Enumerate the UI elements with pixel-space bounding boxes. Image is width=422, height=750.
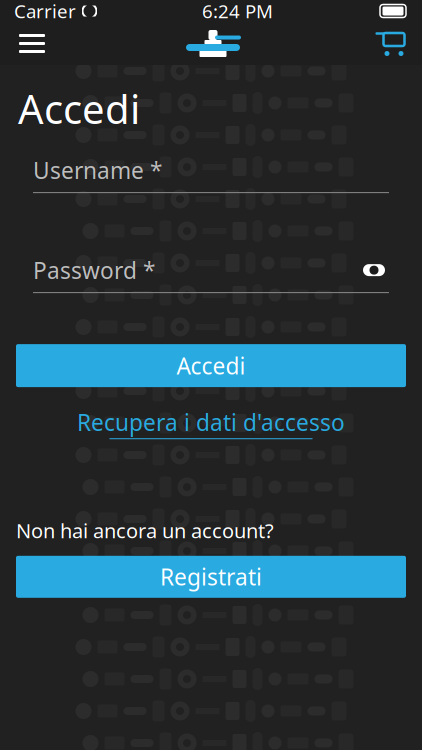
button[interactable]: Shopping cart (374, 27, 422, 59)
staticText: Accedi (176, 351, 245, 381)
button[interactable]: Accedi (0, 344, 422, 387)
staticText: 6:24 PM (202, 0, 273, 23)
staticText: Registrati (160, 562, 262, 592)
staticText: Carrier (14, 0, 76, 23)
button[interactable]: Show password (359, 259, 389, 281)
button[interactable]: Menu (0, 26, 52, 60)
staticText: Recupera i dati d'accesso (77, 407, 345, 437)
button[interactable]: Home (175, 24, 251, 62)
staticText: Non hai ancora un account? (16, 517, 274, 544)
staticText: Username * (33, 155, 162, 185)
staticText: Accedi (18, 82, 140, 135)
staticText: Password * (33, 255, 155, 285)
button[interactable]: Recupera i dati d'accesso (57, 405, 365, 441)
button[interactable]: Registrati (0, 556, 422, 598)
